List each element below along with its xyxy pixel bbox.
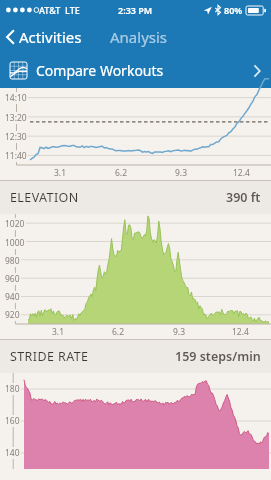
staticText: 13:20 [5, 112, 27, 124]
staticText: 9.3 [173, 326, 186, 338]
staticText: 940 [5, 291, 20, 303]
staticText: AT&T [39, 4, 61, 16]
button[interactable]: Compare Workouts [0, 53, 271, 88]
staticText: 960 [5, 273, 20, 285]
staticText: 160 [5, 415, 20, 427]
staticText: LTE [65, 4, 80, 16]
staticText: Compare Workouts [36, 61, 164, 80]
staticText: 3.1 [52, 326, 65, 338]
staticText: 12.4 [232, 326, 249, 338]
staticText: 180 [5, 383, 20, 395]
staticText: Analysis [110, 27, 168, 47]
staticText: 80% [224, 4, 243, 16]
staticText: 159 steps/min [175, 348, 261, 365]
staticText: ELEVATION [10, 189, 79, 206]
staticText: 11:40 [5, 150, 27, 162]
staticText: 920 [5, 309, 20, 321]
button[interactable]: Activities [0, 23, 90, 51]
staticText: 1000 [5, 237, 25, 249]
staticText: 12:30 [5, 131, 27, 143]
staticText: 6.2 [112, 326, 125, 338]
staticText: 14:10 [5, 92, 27, 104]
staticText: 12.4 [233, 167, 250, 179]
staticText: 3.1 [54, 167, 67, 179]
staticText: 1020 [5, 218, 25, 230]
staticText: 9.3 [175, 167, 188, 179]
staticText: 980 [5, 255, 20, 267]
staticText: 140 [5, 447, 20, 459]
staticText: 390 ft [226, 189, 261, 206]
staticText: 6.2 [115, 167, 128, 179]
staticText: STRIDE RATE [10, 348, 89, 365]
staticText: Activities [19, 27, 82, 47]
staticText: 2:33 PM [118, 4, 153, 16]
